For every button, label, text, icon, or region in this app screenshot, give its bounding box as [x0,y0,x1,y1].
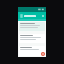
button[interactable]: Menu [18,12,46,19]
button[interactable]: Add [41,52,45,56]
button[interactable]: Menu [18,12,24,19]
button[interactable]: More options [40,12,46,19]
button[interactable] [19,22,45,31]
button[interactable] [19,46,45,56]
button[interactable] [19,34,45,43]
